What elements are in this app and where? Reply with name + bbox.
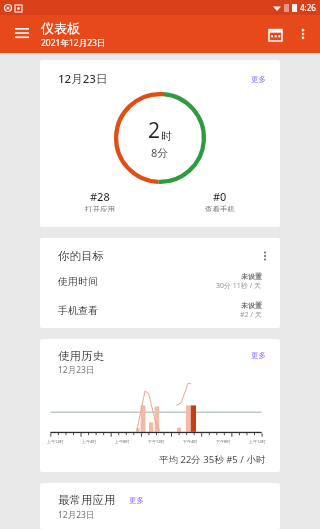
button[interactable]: 使用历史 bbox=[40, 339, 280, 472]
staticText: 手机查看 bbox=[58, 304, 98, 317]
staticText: 2021年12月23日 bbox=[41, 37, 106, 49]
staticText: 更多 bbox=[251, 351, 266, 360]
staticText: 下午12时 bbox=[148, 439, 165, 444]
staticText: 8分 bbox=[151, 145, 169, 160]
staticText: 上午8时 bbox=[115, 439, 130, 444]
staticText: #0 bbox=[213, 189, 227, 204]
staticText: 上午4时 bbox=[82, 439, 97, 444]
staticText: 最常用应用 bbox=[58, 493, 116, 507]
button[interactable]: #28 bbox=[40, 189, 160, 212]
staticText: 30分 11秒 / 天 bbox=[216, 281, 262, 291]
button[interactable]: 更多 bbox=[125, 494, 148, 507]
button[interactable]: Goal options bbox=[256, 247, 274, 265]
staticText: 时 bbox=[161, 129, 172, 143]
button[interactable]: Open navigation drawer bbox=[9, 21, 35, 47]
staticText: 平均 22分 35秒 #5 / 小时 bbox=[159, 453, 266, 466]
staticText: 仪表板 bbox=[41, 20, 80, 36]
staticText: 使用历史 bbox=[58, 349, 104, 363]
button[interactable]: More options bbox=[289, 20, 317, 48]
button[interactable]: 使用时间 bbox=[40, 272, 280, 291]
staticText: #28 bbox=[90, 189, 110, 204]
staticText: 你的目标 bbox=[58, 249, 104, 263]
button[interactable]: 更多 bbox=[247, 349, 270, 362]
button[interactable]: 更多 bbox=[247, 73, 270, 86]
staticText: 打开应用 bbox=[85, 205, 115, 212]
staticText: 下午8时 bbox=[216, 439, 231, 444]
staticText: 上午12时 bbox=[47, 439, 64, 444]
staticText: #2 / 天 bbox=[240, 310, 262, 320]
staticText: 使用时间 bbox=[58, 275, 98, 288]
staticText: 上午12时 bbox=[249, 439, 266, 444]
staticText: 12月23日 bbox=[58, 71, 108, 87]
staticText: 下午4时 bbox=[183, 439, 198, 444]
staticText: 更多 bbox=[251, 75, 266, 84]
button[interactable]: #0 bbox=[160, 189, 280, 212]
button[interactable]: 12月23日 bbox=[40, 60, 280, 227]
button[interactable]: Select date bbox=[261, 20, 289, 48]
button[interactable]: 手机查看 bbox=[40, 301, 280, 320]
button[interactable]: 最常用应用 bbox=[40, 483, 280, 529]
staticText: 2 bbox=[148, 116, 161, 145]
staticText: 更多 bbox=[129, 496, 144, 505]
staticText: 12月23日 bbox=[58, 364, 95, 376]
staticText: 未设置 bbox=[241, 272, 262, 281]
staticText: 4:26 bbox=[300, 2, 316, 13]
staticText: 查看手机 bbox=[205, 205, 235, 212]
button[interactable]: 你的目标 bbox=[40, 238, 280, 328]
staticText: 未设置 bbox=[241, 301, 262, 310]
staticText: 12月23日 bbox=[58, 509, 95, 521]
